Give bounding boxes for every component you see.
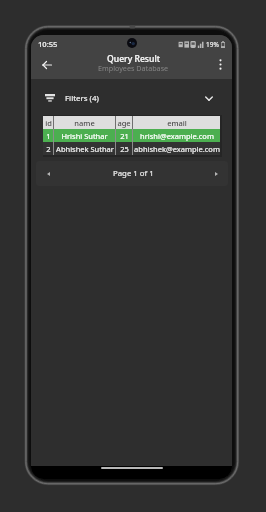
staticText: Query Result	[107, 53, 161, 65]
staticText: Employees Database	[98, 63, 169, 73]
staticText: Filters (4)	[65, 93, 99, 104]
staticText: 2	[46, 144, 51, 154]
staticText: 21	[120, 131, 129, 141]
button[interactable]: Filters (4)	[31, 84, 232, 112]
staticText: age	[117, 118, 131, 128]
staticText: Page 1 of 1	[113, 168, 154, 179]
staticText: 1	[46, 131, 51, 141]
button[interactable]: More options	[212, 56, 228, 72]
button[interactable]: Previous page	[40, 166, 56, 182]
staticText: abhishek@example.com	[134, 144, 220, 154]
staticText: name	[74, 118, 95, 128]
staticText: id	[45, 118, 52, 128]
staticText: hrishi@example.com	[140, 131, 214, 141]
staticText: 10:55	[38, 39, 58, 49]
staticText: 19%	[206, 40, 219, 49]
staticText: Hrishi Suthar	[61, 131, 108, 141]
staticText: email	[167, 118, 187, 128]
button[interactable]: Back	[38, 56, 55, 73]
staticText: 25	[120, 144, 129, 154]
staticText: Abhishek Suthar	[56, 144, 114, 154]
button[interactable]: Next page	[208, 166, 224, 182]
